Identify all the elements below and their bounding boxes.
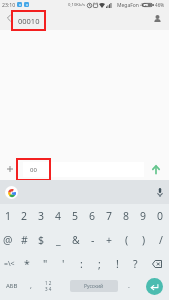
button[interactable]: * xyxy=(18,252,36,276)
staticText: 0,10Kb/s xyxy=(68,2,86,8)
staticText: ! xyxy=(116,257,119,271)
button[interactable]: 2 xyxy=(16,204,33,228)
button[interactable]: Account xyxy=(147,9,167,29)
staticText: Русский xyxy=(84,283,104,290)
button[interactable]: АБВ xyxy=(2,276,21,296)
staticText: 7 xyxy=(106,209,113,223)
button[interactable]: ' xyxy=(54,252,72,276)
button[interactable]: / xyxy=(152,228,169,252)
button[interactable]: ( xyxy=(118,228,135,252)
staticText: 5 xyxy=(72,209,79,223)
staticText: 2 xyxy=(21,209,28,223)
staticText: 1 xyxy=(5,209,12,223)
staticText: ? xyxy=(133,257,138,271)
staticText: ( xyxy=(125,233,129,247)
button[interactable]: ; xyxy=(90,252,108,276)
staticText: " xyxy=(43,257,48,271)
staticText: + xyxy=(106,233,113,247)
button[interactable]: 8 xyxy=(118,204,135,228)
button[interactable]: Voice input xyxy=(151,183,169,201)
staticText: 00 xyxy=(30,166,37,174)
staticText: ; xyxy=(98,257,101,271)
staticText: 1 2 xyxy=(45,280,52,286)
staticText: _ xyxy=(56,233,61,247)
button[interactable]: ) xyxy=(135,228,152,252)
button[interactable]: Backspace xyxy=(144,252,169,276)
button[interactable]: Back xyxy=(2,11,16,25)
staticText: АБВ xyxy=(6,282,18,290)
button[interactable]: ? xyxy=(126,252,144,276)
button[interactable]: 9 xyxy=(135,204,152,228)
button[interactable]: : xyxy=(72,252,90,276)
button[interactable]: 1 xyxy=(0,204,16,228)
button[interactable]: Numbers xyxy=(40,276,56,296)
staticText: & xyxy=(72,233,80,247)
staticText: MegaFon 4G xyxy=(117,2,147,9)
button[interactable]: ! xyxy=(108,252,126,276)
staticText: ' xyxy=(62,257,65,271)
button[interactable]: # xyxy=(16,228,33,252)
staticText: 23:10 xyxy=(2,1,16,8)
staticText: 0 xyxy=(157,209,164,223)
staticText: 6 xyxy=(89,209,96,223)
button[interactable]: & xyxy=(67,228,84,252)
staticText: 3 4 xyxy=(45,286,52,292)
button[interactable] xyxy=(23,162,144,177)
staticText: , xyxy=(30,281,32,291)
staticText: / xyxy=(159,233,163,247)
staticText: # xyxy=(21,233,28,247)
button[interactable]: 0 xyxy=(152,204,169,228)
button[interactable]: Add attachment xyxy=(3,162,17,176)
staticText: 00010 xyxy=(18,16,40,26)
button[interactable]: @ xyxy=(0,228,16,252)
staticText: @ xyxy=(3,233,13,247)
staticText: $ xyxy=(38,233,45,247)
button[interactable]: 00010 xyxy=(11,10,46,31)
button[interactable]: $ xyxy=(33,228,50,252)
staticText: : xyxy=(80,257,83,271)
button[interactable]: " xyxy=(36,252,54,276)
staticText: * xyxy=(24,257,30,271)
button[interactable]: 3 xyxy=(33,204,50,228)
button[interactable]: 4 xyxy=(50,204,67,228)
button[interactable]: - xyxy=(84,228,101,252)
staticText: 9 xyxy=(140,209,147,223)
button[interactable]: Русский xyxy=(70,280,118,292)
button[interactable]: . xyxy=(122,276,136,296)
staticText: 3 xyxy=(38,209,45,223)
button[interactable]: 7 xyxy=(101,204,118,228)
button[interactable]: =\< xyxy=(0,252,18,276)
staticText: . xyxy=(128,281,130,291)
button[interactable]: 5 xyxy=(67,204,84,228)
button[interactable]: _ xyxy=(50,228,67,252)
button[interactable]: Google xyxy=(2,183,20,201)
button[interactable]: , xyxy=(24,276,38,296)
button[interactable]: Send xyxy=(146,160,165,179)
staticText: 46% xyxy=(155,2,165,8)
button[interactable]: Enter xyxy=(146,278,163,295)
staticText: =\< xyxy=(4,259,15,269)
button[interactable]: + xyxy=(101,228,118,252)
button[interactable]: 6 xyxy=(84,204,101,228)
staticText: - xyxy=(91,233,95,247)
staticText: 8 xyxy=(123,209,130,223)
staticText: 4 xyxy=(55,209,62,223)
staticText: ) xyxy=(142,233,146,247)
